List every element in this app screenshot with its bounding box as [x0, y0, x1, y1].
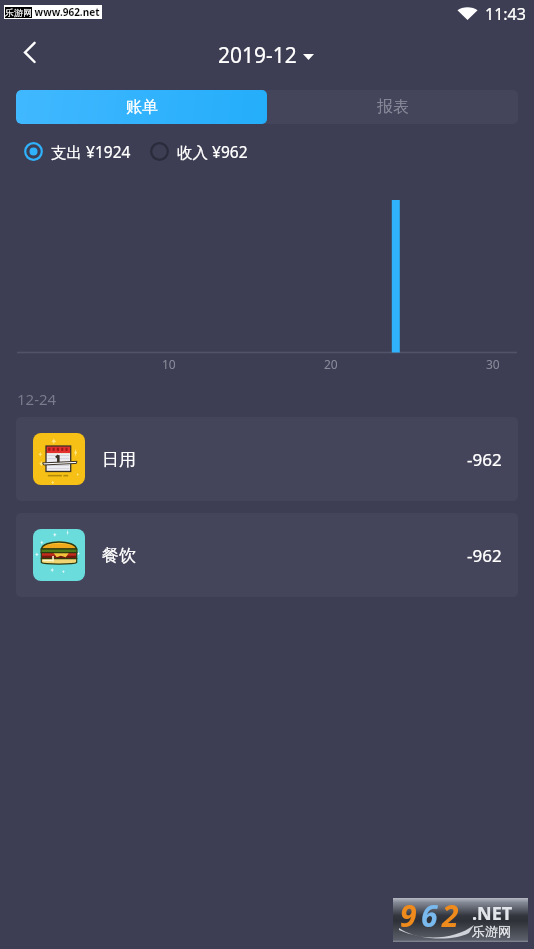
staticText: 2: [442, 895, 463, 936]
staticText: 乐游网: [5, 7, 32, 18]
staticText: 餐饮: [102, 545, 136, 566]
staticText: 30: [486, 356, 500, 372]
staticText: -962: [467, 448, 502, 471]
button[interactable]: 报表: [267, 90, 518, 124]
staticText: www.962.net: [32, 5, 100, 19]
button[interactable]: 支出 ¥1924: [24, 141, 131, 162]
staticText: 乐游网: [472, 923, 511, 939]
button[interactable]: 账单: [16, 90, 267, 124]
staticText: 账单: [126, 97, 158, 117]
staticText: 20: [324, 356, 338, 372]
button[interactable]: 日用: [16, 417, 518, 501]
staticText: 日用: [102, 449, 136, 470]
staticText: 报表: [377, 97, 409, 117]
staticText: 支出 ¥1924: [51, 141, 131, 162]
staticText: 6: [421, 895, 442, 936]
staticText: 11:43: [485, 3, 526, 25]
staticText: .NET: [472, 901, 513, 926]
button[interactable]: 2019-12: [218, 41, 314, 70]
staticText: -962: [467, 544, 502, 567]
button[interactable]: 收入 ¥962: [150, 141, 248, 162]
button[interactable]: Back: [6, 30, 52, 76]
staticText: 收入 ¥962: [177, 141, 248, 162]
button[interactable]: 餐饮: [16, 513, 518, 597]
staticText: 2019-12: [218, 41, 297, 70]
staticText: 10: [162, 356, 176, 372]
staticText: 12-24: [17, 389, 57, 409]
staticText: 9: [400, 895, 421, 936]
